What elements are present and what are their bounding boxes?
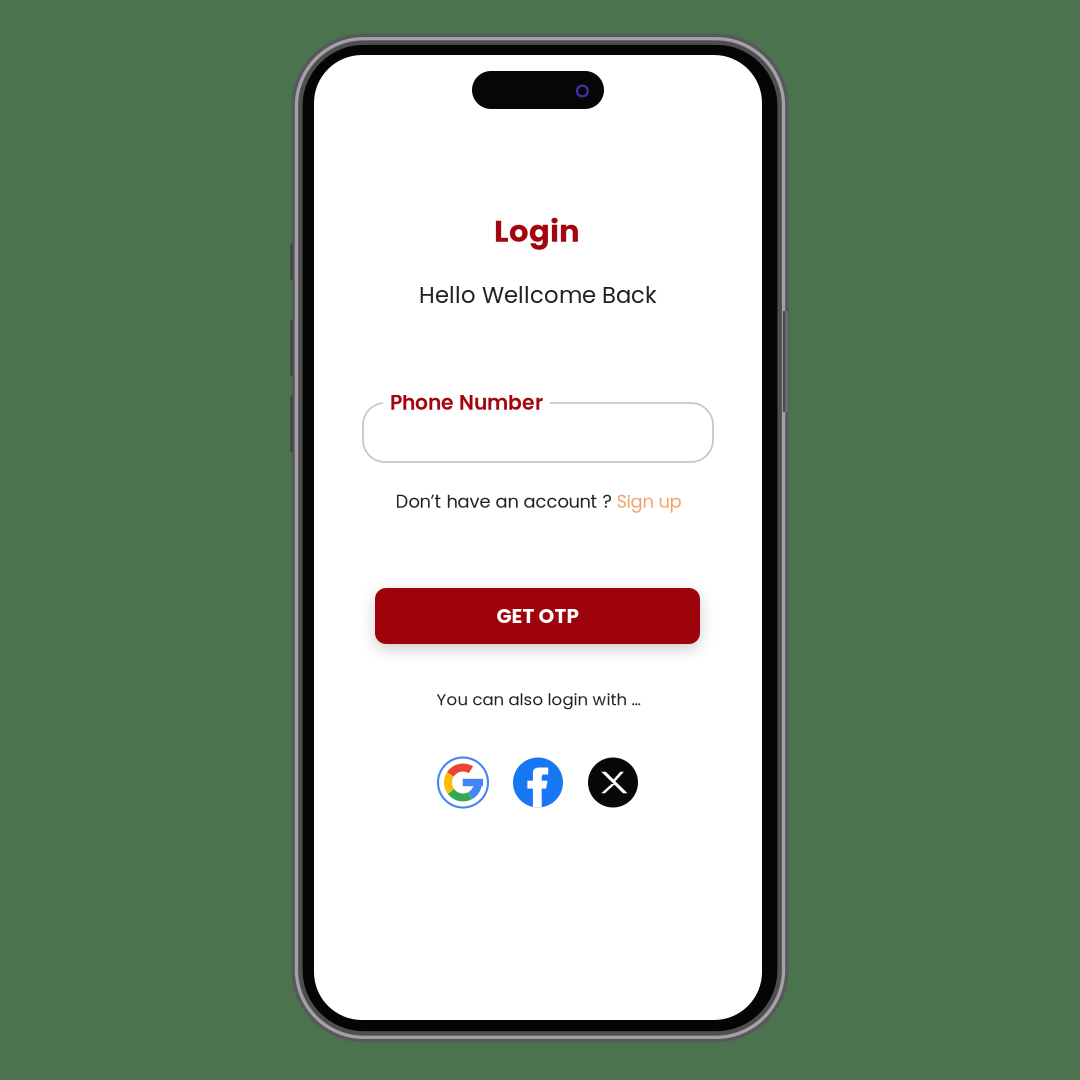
staticText: GET OTP bbox=[496, 602, 578, 630]
button[interactable]: Sign in with Facebook bbox=[513, 757, 563, 807]
staticText: Hello Wellcome Back bbox=[419, 279, 657, 311]
staticText: Login bbox=[494, 209, 580, 252]
staticText: Phone Number bbox=[390, 388, 543, 417]
button[interactable]: GET OTP bbox=[375, 588, 700, 644]
staticText: Sign up bbox=[616, 489, 681, 514]
button[interactable]: Sign in with X bbox=[588, 757, 638, 807]
button[interactable]: Sign in with Google bbox=[438, 757, 488, 807]
staticText: Don’t have an account ? bbox=[395, 489, 616, 514]
staticText: You can also login with ... bbox=[436, 688, 640, 711]
button[interactable]: Don’t have an account ? bbox=[395, 489, 681, 514]
